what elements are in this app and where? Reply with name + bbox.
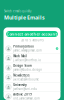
staticText: Archive 2019 bbox=[13, 93, 32, 96]
staticText: Design Team bbox=[13, 64, 32, 67]
staticText: j.wilson@northco.io bbox=[13, 58, 41, 62]
button[interactable]: Work Mail bbox=[3, 54, 60, 63]
staticText: Primary Inbox bbox=[13, 45, 33, 48]
button[interactable]: University bbox=[3, 82, 60, 92]
staticText: jwilson@uni.edu bbox=[13, 87, 37, 91]
staticText: Connect another account bbox=[6, 31, 57, 37]
button[interactable]: Archive 2019 bbox=[3, 92, 60, 100]
staticText: jw.reads@inbox.me bbox=[13, 78, 39, 81]
staticText: Newsletters bbox=[13, 74, 29, 77]
staticText: Work Mail bbox=[13, 54, 27, 58]
button[interactable]: Newsletters bbox=[3, 73, 60, 82]
staticText: old.jamie@mail.com bbox=[13, 97, 39, 100]
button[interactable]: Primary Inbox bbox=[3, 44, 60, 54]
staticText: jamie@studio.design bbox=[13, 68, 42, 71]
staticText: Multiple Emails bbox=[4, 14, 45, 21]
staticText: Switch emails quickly bbox=[4, 9, 31, 13]
button[interactable]: Design Team bbox=[3, 63, 60, 73]
button[interactable]: Connect another account bbox=[6, 31, 58, 37]
staticText: Up to 5 accounts bbox=[20, 38, 43, 42]
staticText: jamie.w@appmail.com bbox=[13, 49, 41, 52]
staticText: University bbox=[13, 83, 26, 87]
